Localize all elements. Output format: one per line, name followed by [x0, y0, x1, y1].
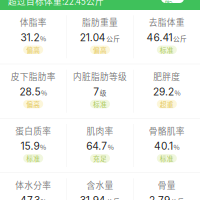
staticText: 31.2: [20, 31, 39, 44]
staticText: 皮下脂肪率: [11, 70, 56, 82]
staticText: %: [41, 88, 47, 97]
staticText: 标准: [160, 45, 174, 55]
staticText: 超过目标体重:22.45公斤: [8, 0, 104, 7]
staticText: 29.2: [153, 86, 174, 98]
staticText: 脂肪重量: [82, 16, 118, 28]
staticText: 公斤: [171, 196, 185, 200]
staticText: 46.41: [147, 31, 173, 44]
staticText: %: [40, 142, 46, 152]
staticText: 31.94: [80, 194, 106, 200]
staticText: 公斤: [106, 196, 120, 200]
staticText: %: [108, 142, 114, 152]
staticText: 偏高: [26, 99, 40, 109]
staticText: 级: [100, 88, 107, 97]
staticText: 去脂体重: [149, 16, 185, 28]
staticText: %: [175, 88, 181, 97]
staticText: 2.79: [149, 194, 170, 200]
staticText: 标准: [26, 153, 40, 163]
staticText: %: [174, 142, 180, 152]
staticText: 28.5: [19, 86, 40, 98]
staticText: 偏高: [26, 45, 40, 55]
staticText: %: [40, 33, 46, 43]
staticText: 体脂率: [20, 16, 47, 28]
staticText: 骨量: [158, 179, 176, 191]
staticText: 体水分率: [15, 179, 51, 191]
staticText: 骨骼肌率: [149, 124, 185, 137]
staticText: 超重: [160, 99, 174, 109]
staticText: 充足: [93, 153, 107, 163]
staticText: 64.7: [86, 140, 107, 152]
staticText: %: [40, 196, 46, 200]
staticText: 21.04: [80, 31, 106, 44]
staticText: 蛋白质率: [15, 124, 51, 137]
staticText: 标准: [93, 99, 107, 109]
staticText: 公斤: [173, 33, 187, 43]
staticText: 内脏脂肪等级: [73, 70, 127, 82]
staticText: 肌肉率: [86, 124, 113, 137]
staticText: 肥胖度: [153, 70, 180, 82]
staticText: 7: [93, 86, 99, 98]
staticText: 标准: [160, 153, 174, 163]
staticText: 47.3: [20, 194, 40, 200]
staticText: 40.1: [154, 140, 173, 152]
button[interactable]: 去减脂: [161, 0, 184, 9]
staticText: 15.9: [20, 140, 39, 152]
staticText: 偏高: [93, 45, 107, 55]
staticText: 公斤: [106, 33, 120, 43]
staticText: 去减脂: [164, 0, 180, 10]
staticText: 含水量: [86, 179, 113, 191]
